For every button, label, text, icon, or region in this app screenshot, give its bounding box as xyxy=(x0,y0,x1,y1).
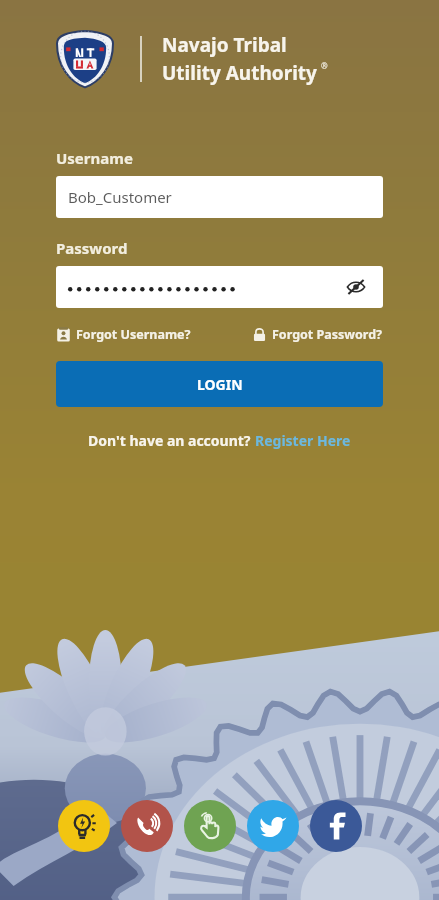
staticText: ® xyxy=(321,60,328,71)
button[interactable]: Outage reporting xyxy=(58,800,110,852)
button[interactable]: LOGIN xyxy=(56,361,383,407)
staticText: Utility Authority xyxy=(162,60,317,86)
staticText: Forgot Username? xyxy=(76,326,191,343)
button[interactable]: Twitter xyxy=(247,800,299,852)
staticText: Register Here xyxy=(255,431,351,450)
button[interactable]: Bob_Customer xyxy=(56,176,383,218)
staticText: Username xyxy=(56,148,133,168)
button[interactable]: Forgot Password? xyxy=(252,326,383,343)
button[interactable]: Facebook xyxy=(310,800,362,852)
staticText: LOGIN xyxy=(197,375,243,394)
button[interactable]: Self service xyxy=(184,800,236,852)
staticText: Password xyxy=(56,238,128,258)
button[interactable]: Call us xyxy=(121,800,173,852)
button[interactable]: Show password xyxy=(56,266,383,308)
button[interactable]: Register Here xyxy=(255,431,351,450)
staticText: Forgot Password? xyxy=(272,326,383,343)
button[interactable]: Show password xyxy=(341,272,371,302)
staticText: Bob_Customer xyxy=(68,187,172,207)
staticText: Don't have an account? xyxy=(88,431,255,450)
staticText: Navajo Tribal xyxy=(162,32,287,58)
button[interactable]: Forgot Username? xyxy=(56,326,191,343)
